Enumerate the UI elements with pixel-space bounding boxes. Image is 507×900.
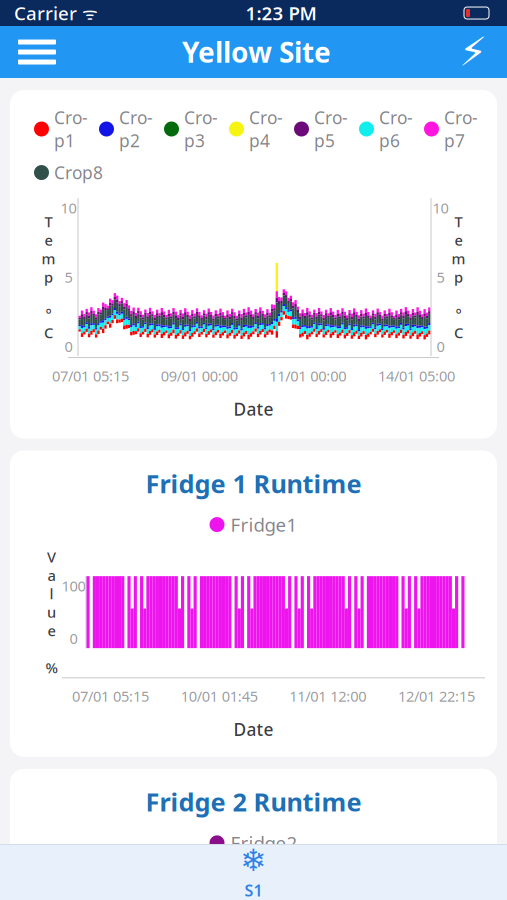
staticText: ᯤ xyxy=(77,1,98,24)
staticText: 09/01 00:00 xyxy=(161,366,238,386)
staticText: 07/01 05:15 xyxy=(52,366,129,386)
staticText: m xyxy=(451,249,465,268)
staticText: e xyxy=(44,230,52,250)
staticText: 11/01 12:00 xyxy=(289,686,366,706)
button[interactable]: Menu xyxy=(6,29,68,74)
staticText: % xyxy=(45,658,57,677)
staticText: S1 xyxy=(244,880,262,900)
staticText: p xyxy=(44,267,53,287)
staticText: T xyxy=(454,212,462,231)
staticText: Yellow Site xyxy=(182,33,331,71)
staticText: 100 xyxy=(61,576,85,596)
staticText: 10 xyxy=(60,198,76,218)
staticText: 0 xyxy=(69,629,77,648)
staticText: Crop6 xyxy=(379,106,413,152)
staticText: a xyxy=(47,565,55,585)
staticText: m xyxy=(41,249,55,268)
staticText: Crop3 xyxy=(184,106,218,152)
staticText: ⚡︎ xyxy=(459,29,487,75)
staticText: T xyxy=(44,212,52,231)
staticText: 5 xyxy=(64,267,72,287)
staticText: ❄ xyxy=(240,843,266,878)
staticText: Carrier xyxy=(14,1,77,25)
staticText: 10/01 01:45 xyxy=(181,686,258,706)
staticText: e xyxy=(454,230,462,250)
staticText: V xyxy=(47,547,56,566)
staticText: Fridge1 xyxy=(230,512,297,537)
staticText: 5 xyxy=(436,267,444,287)
staticText: 14/01 05:00 xyxy=(378,366,455,386)
staticText: ° xyxy=(45,304,51,324)
staticText: 0 xyxy=(436,337,444,356)
staticText: e xyxy=(47,621,55,640)
staticText: 1:23 PM xyxy=(245,1,316,25)
button[interactable]: Power xyxy=(445,23,501,81)
staticText: Crop1 xyxy=(54,106,88,152)
staticText: Crop7 xyxy=(444,106,478,152)
staticText: 10 xyxy=(432,198,448,218)
staticText: 12/01 22:15 xyxy=(398,686,475,706)
staticText: p xyxy=(454,267,463,287)
staticText: ° xyxy=(455,304,461,324)
staticText: Crop4 xyxy=(249,106,283,152)
staticText: 0 xyxy=(64,337,72,356)
staticText: Fridge2 xyxy=(230,830,297,855)
staticText: Fridge 2 Runtime xyxy=(145,785,361,818)
staticText: u xyxy=(47,602,56,622)
staticText: Date xyxy=(233,397,273,420)
staticText: Crop5 xyxy=(314,106,348,152)
staticText: Crop8 xyxy=(54,161,103,184)
staticText: C xyxy=(44,323,53,342)
staticText: Fridge 1 Runtime xyxy=(145,466,361,500)
staticText: l xyxy=(49,584,53,603)
staticText: Date xyxy=(233,718,273,741)
staticText: Crop2 xyxy=(119,106,153,152)
staticText: C xyxy=(454,323,463,342)
button[interactable]: ❄ xyxy=(210,837,296,900)
staticText: 11/01 00:00 xyxy=(269,366,346,386)
staticText: 07/01 05:15 xyxy=(72,686,149,706)
